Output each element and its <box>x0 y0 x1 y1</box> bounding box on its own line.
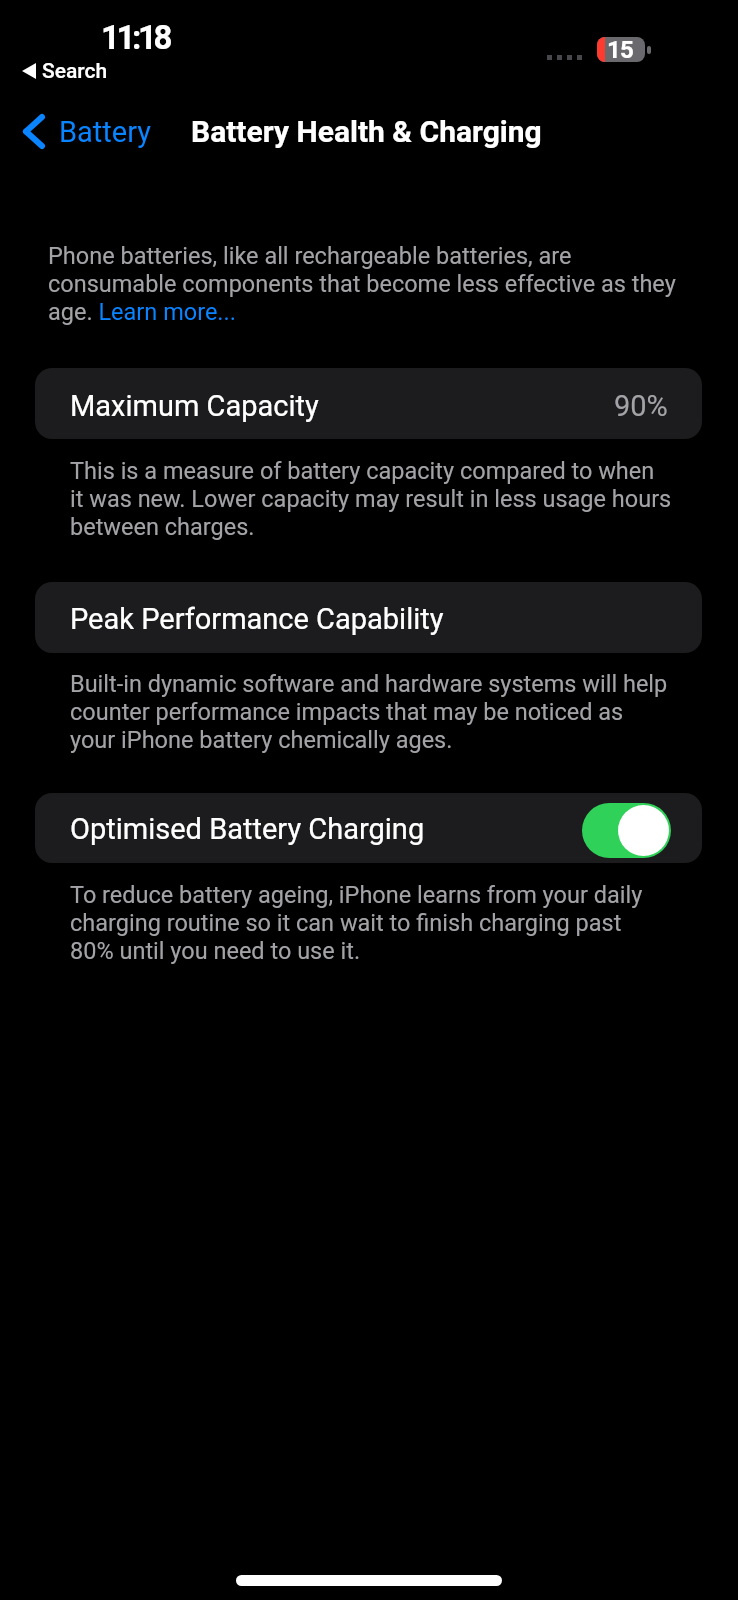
button[interactable]: Optimised Battery Charging toggle <box>582 803 671 858</box>
button[interactable]: Peak Performance Capability <box>35 582 702 653</box>
button[interactable]: Back <box>23 114 159 149</box>
button[interactable]: Optimised Battery Charging <box>35 793 702 863</box>
staticText: Built-in dynamic software and hardware s… <box>70 670 672 754</box>
staticText: Battery Health & Charging <box>191 114 542 149</box>
staticText: 90% <box>614 389 668 423</box>
staticText: Optimised Battery Charging <box>70 812 425 846</box>
staticText: To reduce battery ageing, iPhone learns … <box>70 881 670 965</box>
staticText: 11:18 <box>101 18 170 57</box>
staticText: Maximum Capacity <box>70 389 319 423</box>
other: Back <box>23 114 45 149</box>
staticText: Phone batteries, like all rechargeable b… <box>48 242 690 326</box>
staticText: This is a measure of battery capacity co… <box>70 457 672 541</box>
other: Back to Search <box>22 63 36 79</box>
staticText: 15 <box>607 37 633 61</box>
button[interactable]: Back to Search <box>22 58 108 83</box>
staticText: Peak Performance Capability <box>70 602 444 636</box>
staticText: Search <box>42 59 108 84</box>
staticText: Battery <box>59 115 151 149</box>
button[interactable]: Maximum Capacity <box>35 368 702 439</box>
